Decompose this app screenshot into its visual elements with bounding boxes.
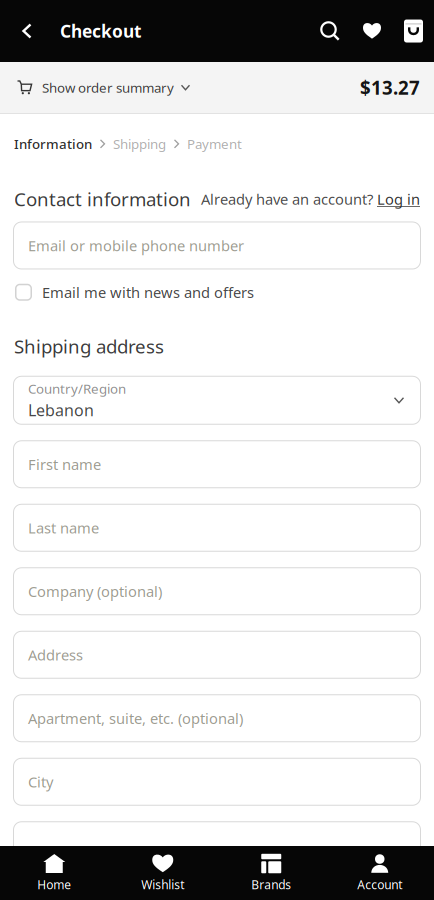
- textField[interactable]: City: [28, 772, 421, 791]
- staticText: Last name: [28, 518, 99, 537]
- button[interactable]: Payment: [187, 135, 242, 153]
- staticText: Shipping address: [14, 334, 164, 359]
- staticText: Email me with news and offers: [42, 282, 254, 302]
- staticText: Checkout: [60, 19, 142, 42]
- button[interactable]: Home: [0, 846, 108, 900]
- staticText: Address: [28, 645, 83, 664]
- staticText: First name: [28, 454, 101, 474]
- textField[interactable]: Apartment, suite, etc. (optional): [28, 708, 421, 728]
- button[interactable]: Wishlist: [351, 9, 393, 53]
- textField[interactable]: Last name: [28, 518, 421, 537]
- staticText: Home: [37, 876, 71, 892]
- staticText: Shipping: [113, 135, 166, 153]
- staticText: Payment: [187, 135, 242, 153]
- staticText: Brands: [251, 876, 291, 892]
- staticText: $13.27: [360, 75, 420, 100]
- staticText: Already have an account?: [201, 189, 377, 209]
- staticText: Account: [357, 876, 402, 892]
- staticText: Country/Region: [28, 380, 126, 397]
- button[interactable]: Account: [325, 846, 434, 900]
- button[interactable]: Information: [14, 135, 92, 153]
- staticText: Lebanon: [28, 399, 94, 421]
- button[interactable]: Shipping: [113, 135, 166, 153]
- button[interactable]: Back: [7, 9, 47, 53]
- staticText: Information: [14, 135, 92, 153]
- button[interactable]: Brands: [217, 846, 325, 900]
- button[interactable]: Wishlist: [108, 846, 217, 900]
- textField[interactable]: Address: [28, 645, 421, 664]
- staticText: Email or mobile phone number: [28, 236, 244, 255]
- staticText: Log in: [377, 189, 420, 209]
- staticText: Wishlist: [141, 876, 184, 892]
- textField[interactable]: [28, 835, 421, 855]
- button[interactable]: Email me with news and offers: [15, 282, 254, 302]
- textField[interactable]: Email or mobile phone number: [28, 236, 421, 255]
- staticText: Show order summary: [42, 79, 174, 96]
- button[interactable]: Search: [309, 9, 351, 53]
- textField[interactable]: First name: [28, 454, 421, 474]
- staticText: Company (optional): [28, 581, 162, 601]
- staticText: Apartment, suite, etc. (optional): [28, 708, 243, 728]
- staticText: City: [28, 772, 53, 791]
- button[interactable]: Cart: [393, 9, 434, 53]
- button[interactable]: Country/Region: [13, 376, 421, 425]
- button[interactable]: Log in: [377, 189, 420, 209]
- staticText: Contact information: [14, 187, 191, 211]
- button[interactable]: Show order summary: [0, 62, 434, 113]
- textField[interactable]: Company (optional): [28, 581, 421, 601]
